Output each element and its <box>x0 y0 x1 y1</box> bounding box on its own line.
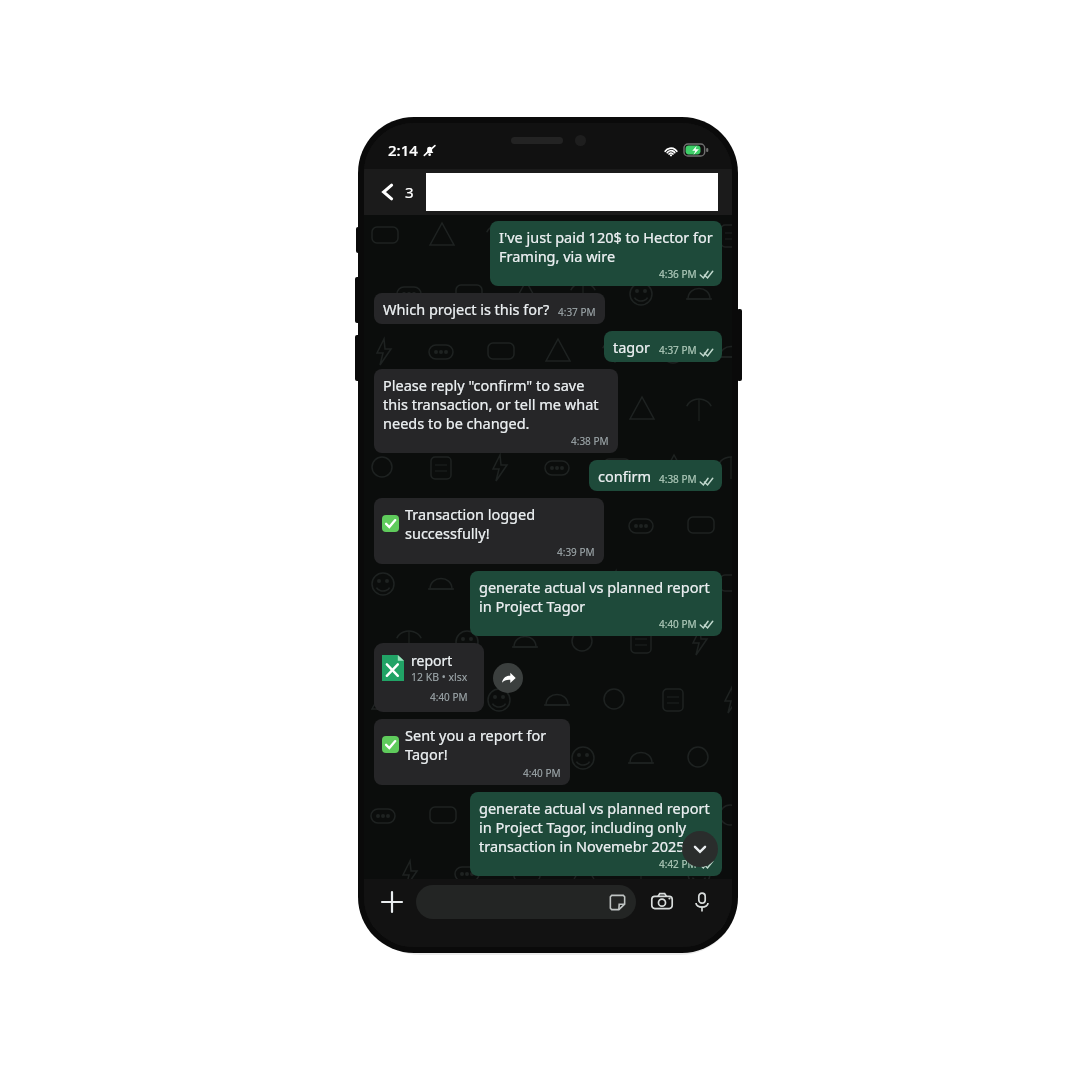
staticText: Which project is this for? <box>383 299 550 319</box>
staticText: confirm <box>598 466 651 486</box>
staticText: 4:39 PM <box>557 545 595 559</box>
staticText: 4:38 PM <box>659 472 697 486</box>
button[interactable]: tagor <box>604 331 722 362</box>
staticText: 4:40 PM <box>523 766 561 780</box>
button[interactable]: generate actual vs planned report in Pro… <box>470 571 722 636</box>
staticText: 4:36 PM <box>659 267 697 281</box>
staticText: generate actual vs planned report in Pro… <box>479 798 713 856</box>
staticText: 4:37 PM <box>659 343 697 357</box>
button[interactable]: Attach <box>378 888 406 916</box>
button[interactable]: Which project is this for? <box>374 293 605 324</box>
button[interactable]: Forward <box>493 663 523 693</box>
staticText: report <box>411 651 453 670</box>
button[interactable]: Please reply "confirm" to save this tran… <box>374 369 618 453</box>
button[interactable]: Stickers <box>608 893 627 912</box>
button[interactable]: generate actual vs planned report in Pro… <box>470 792 722 876</box>
staticText: Sent you a report for Tagor! <box>405 725 561 764</box>
button[interactable]: Stickers <box>416 885 636 919</box>
staticText: 4:37 PM <box>558 305 596 319</box>
staticText: 4:40 PM <box>659 617 697 631</box>
button[interactable]: Camera <box>648 888 676 916</box>
staticText: 4:38 PM <box>571 434 609 448</box>
button[interactable]: Sent you a report for Tagor! <box>374 719 570 785</box>
staticText: 3 <box>405 182 414 202</box>
staticText: tagor <box>613 337 651 357</box>
button[interactable]: Transaction logged successfully! <box>374 498 604 564</box>
button[interactable]: Voice message <box>688 888 716 916</box>
staticText: 4:40 PM <box>430 690 468 704</box>
staticText: Please reply "confirm" to save this tran… <box>383 375 609 433</box>
button[interactable]: confirm <box>589 460 722 491</box>
staticText: I've just paid 120$ to Hector for Framin… <box>499 227 713 266</box>
button[interactable]: I've just paid 120$ to Hector for Framin… <box>490 221 722 286</box>
staticText: 2:14 <box>388 140 418 160</box>
staticText: 12 KB • xlsx <box>411 670 468 684</box>
staticText: generate actual vs planned report in Pro… <box>479 577 713 616</box>
staticText: Transaction logged successfully! <box>405 504 595 543</box>
staticText: 4:42 PM <box>659 857 697 871</box>
button[interactable]: report <box>374 643 484 712</box>
button[interactable]: Scroll to bottom <box>682 831 718 867</box>
button[interactable]: Back <box>364 169 420 215</box>
